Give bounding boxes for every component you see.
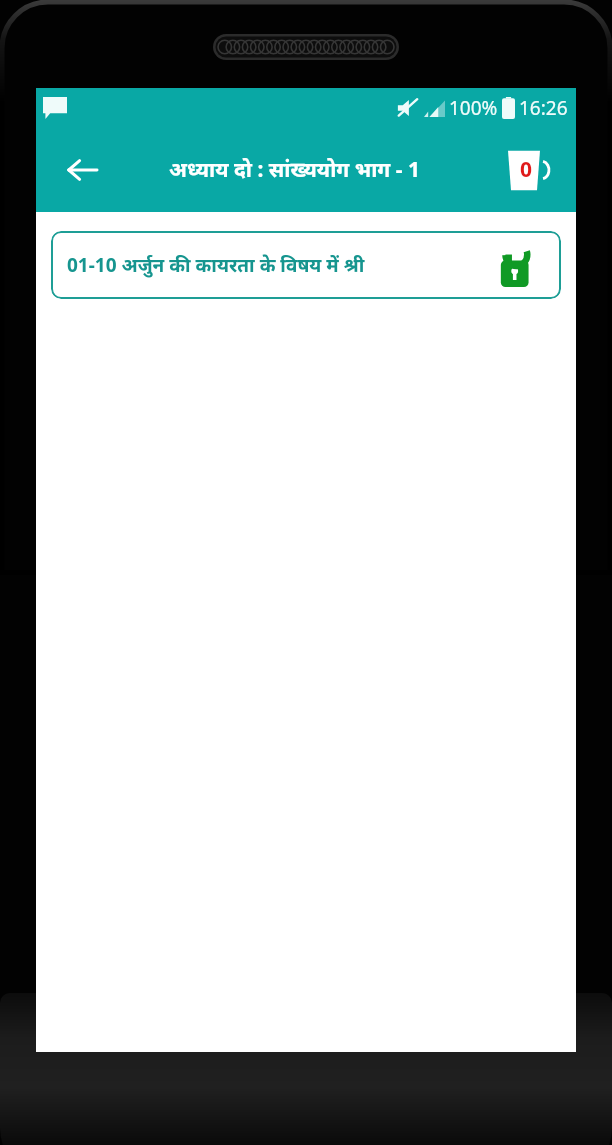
staticText: अध्याय दो : सांख्ययोग भाग - 1	[169, 155, 420, 184]
staticText: 16:26	[519, 95, 568, 121]
button[interactable]: 01-10 अर्जुन की कायरता के विषय में श्री	[51, 231, 561, 299]
other: Messages	[43, 97, 67, 119]
staticText: 01-10 अर्जुन की कायरता के विषय में श्री	[67, 252, 365, 278]
other: Unlocked	[497, 241, 545, 289]
button[interactable]: Back	[56, 144, 108, 196]
staticText: 0	[520, 155, 533, 184]
button[interactable]: Score	[502, 143, 558, 197]
staticText: 100%	[449, 95, 498, 121]
